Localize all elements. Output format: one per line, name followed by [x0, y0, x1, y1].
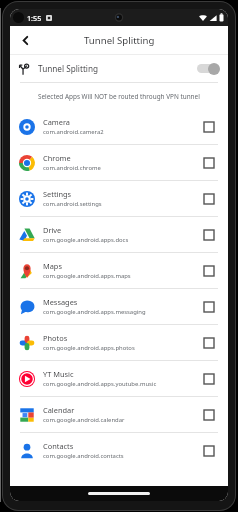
- staticText: Drive: [43, 225, 62, 235]
- button[interactable]: Camera: [10, 109, 228, 144]
- button[interactable]: Maps: [10, 253, 228, 288]
- staticText: Selected Apps Will NOT be routed through…: [38, 92, 200, 101]
- button[interactable]: Select Messages: [199, 297, 219, 317]
- button[interactable]: Calendar: [10, 397, 228, 432]
- button[interactable]: Drive: [10, 217, 228, 252]
- button[interactable]: Back: [15, 30, 35, 50]
- staticText: Settings: [43, 189, 72, 199]
- staticText: Maps: [43, 261, 62, 271]
- staticText: Calendar: [43, 405, 75, 415]
- button[interactable]: Photos: [10, 325, 228, 360]
- button[interactable]: YT Music: [10, 361, 228, 396]
- button[interactable]: Select Settings: [199, 189, 219, 209]
- button[interactable]: Home gesture bar: [88, 492, 150, 495]
- staticText: com.google.android.apps.youtube.music: [43, 380, 157, 388]
- staticText: Contacts: [43, 441, 74, 451]
- button[interactable]: Select Chrome: [199, 153, 219, 173]
- staticText: com.google.android.apps.photos: [43, 344, 135, 352]
- button[interactable]: Select Drive: [199, 225, 219, 245]
- staticText: Tunnel Splitting: [38, 63, 99, 74]
- staticText: com.google.android.apps.docs: [43, 236, 129, 244]
- staticText: YT Music: [43, 369, 74, 379]
- button[interactable]: Select Contacts: [199, 441, 219, 461]
- staticText: com.android.settings: [43, 200, 102, 208]
- button[interactable]: Select Maps: [199, 261, 219, 281]
- staticText: com.google.android.apps.maps: [43, 272, 131, 280]
- staticText: Messages: [43, 297, 78, 307]
- staticText: com.google.android.contacts: [43, 452, 124, 460]
- button[interactable]: Settings: [10, 181, 228, 216]
- staticText: com.android.chrome: [43, 164, 101, 172]
- button[interactable]: Chrome: [10, 145, 228, 180]
- button[interactable]: Tunnel Splitting: [10, 55, 228, 82]
- button[interactable]: Select Calendar: [199, 405, 219, 425]
- staticText: com.google.android.apps.messaging: [43, 308, 146, 316]
- staticText: Tunnel Splitting: [84, 34, 155, 47]
- staticText: 1:55: [27, 13, 42, 23]
- button[interactable]: Contacts: [10, 433, 228, 468]
- button[interactable]: Select YT Music: [199, 369, 219, 389]
- staticText: Camera: [43, 117, 70, 127]
- staticText: com.android.camera2: [43, 128, 104, 136]
- button[interactable]: Tunnel Splitting toggle: [196, 62, 220, 75]
- button[interactable]: Messages: [10, 289, 228, 324]
- staticText: Photos: [43, 333, 68, 343]
- staticText: com.google.android.calendar: [43, 416, 125, 424]
- button[interactable]: Select Camera: [199, 117, 219, 137]
- staticText: Chrome: [43, 153, 71, 163]
- button[interactable]: Select Photos: [199, 333, 219, 353]
